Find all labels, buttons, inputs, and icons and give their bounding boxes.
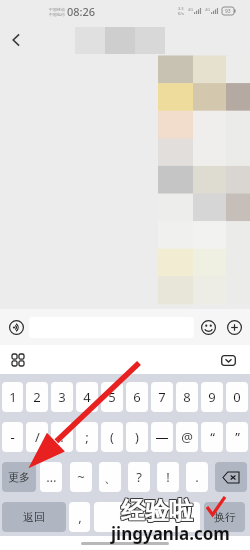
staticText: 经验啦 <box>120 496 192 526</box>
staticText: 9 <box>208 388 216 406</box>
staticText: 3.3 <box>178 6 184 11</box>
button[interactable]: : <box>51 422 73 452</box>
button[interactable]: 6 <box>126 382 148 412</box>
button[interactable]: 2 <box>26 382 48 412</box>
button[interactable]: 返回 <box>2 502 66 532</box>
staticText: 经验啦 <box>122 496 194 526</box>
button[interactable]: 7 <box>151 382 173 412</box>
staticText: K/s <box>178 11 184 16</box>
button[interactable]: 、 <box>99 462 121 492</box>
button[interactable]: , <box>69 502 90 532</box>
staticText: 换行 <box>214 510 236 524</box>
staticText: ) <box>135 428 139 446</box>
button[interactable]: Emoji <box>201 320 216 335</box>
staticText: 4G <box>188 7 194 12</box>
staticText: 中国电信 <box>49 12 65 17</box>
button[interactable]: Voice input <box>6 317 26 337</box>
staticText: 4 <box>83 388 91 406</box>
button[interactable]: 换行 <box>204 502 245 532</box>
staticText: 更多 <box>8 470 30 484</box>
button[interactable]: More <box>227 320 242 335</box>
button[interactable]: Backspace <box>215 462 247 492</box>
staticText: ” <box>235 428 240 446</box>
button[interactable]: 9 <box>201 382 223 412</box>
button[interactable]: - <box>2 422 23 452</box>
button[interactable]: 1 <box>2 382 23 412</box>
button[interactable]: @ <box>176 422 198 452</box>
staticText: 经验啦 <box>120 497 192 527</box>
button[interactable]: Back <box>4 28 28 52</box>
button[interactable]: Hide keyboard <box>220 352 236 368</box>
staticText: 经验啦 <box>121 495 193 525</box>
staticText: 中国移动 <box>49 7 65 12</box>
staticText: : <box>60 428 64 446</box>
staticText: ( <box>110 428 114 446</box>
staticText: ? <box>136 468 142 486</box>
button[interactable]: 3 <box>51 382 73 412</box>
button[interactable] <box>94 502 200 532</box>
staticText: 经验啦 <box>120 495 192 525</box>
button[interactable]: ; <box>76 422 98 452</box>
staticText: 、 <box>104 469 117 485</box>
staticText: @ <box>181 428 193 446</box>
staticText: … <box>46 468 57 486</box>
staticText: 经验啦 <box>122 497 194 527</box>
staticText: 5 <box>108 388 116 406</box>
staticText: 93 <box>225 8 231 15</box>
staticText: 0 <box>233 388 241 406</box>
staticText: - <box>10 428 15 446</box>
staticText: 3 <box>58 388 66 406</box>
button[interactable]: 5 <box>101 382 123 412</box>
button[interactable]: … <box>40 462 62 492</box>
button[interactable]: ? <box>128 462 150 492</box>
button[interactable]: — <box>151 422 173 452</box>
staticText: . <box>195 468 199 486</box>
staticText: “ <box>210 428 215 446</box>
button[interactable]: / <box>26 422 48 452</box>
staticText: / <box>35 428 40 446</box>
staticText: 6 <box>133 388 141 406</box>
button[interactable]: “ <box>201 422 223 452</box>
staticText: 7 <box>158 388 166 406</box>
button[interactable]: 8 <box>176 382 198 412</box>
staticText: 经验啦 <box>121 497 193 527</box>
button[interactable]: . <box>186 462 208 492</box>
button[interactable]: ” <box>226 422 248 452</box>
button[interactable]: ) <box>126 422 148 452</box>
staticText: 08:26 <box>67 4 96 19</box>
staticText: 2 <box>33 388 41 406</box>
staticText: 8 <box>183 388 191 406</box>
staticText: ; <box>85 428 89 446</box>
staticText: jingyanla.com <box>111 522 230 545</box>
button[interactable]: 0 <box>226 382 248 412</box>
button[interactable]: 更多 <box>2 462 36 492</box>
staticText: — <box>155 428 169 446</box>
staticText: ~ <box>77 468 85 486</box>
staticText: , <box>78 508 82 526</box>
staticText: 经验啦 <box>122 495 194 525</box>
staticText: 1 <box>9 388 17 406</box>
staticText: ! <box>166 468 170 486</box>
staticText: 返回 <box>23 510 45 524</box>
button[interactable]: ~ <box>70 462 92 492</box>
button[interactable]: Keyboard options <box>10 352 26 368</box>
button[interactable]: ( <box>101 422 123 452</box>
button[interactable]: ! <box>157 462 179 492</box>
staticText: 经验啦 <box>121 496 193 526</box>
button[interactable]: 4 <box>76 382 98 412</box>
staticText: 4G <box>205 7 211 12</box>
